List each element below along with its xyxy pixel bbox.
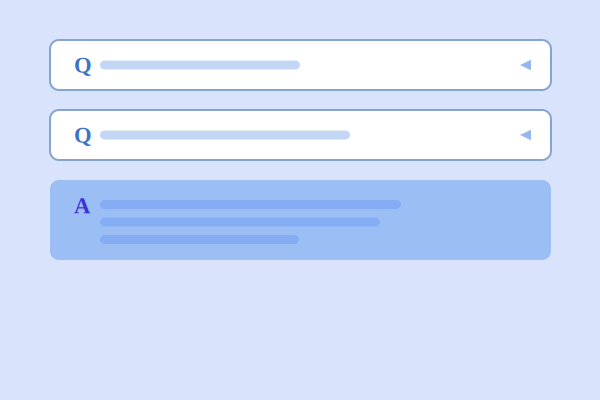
button[interactable]: Question [50, 40, 551, 90]
staticText: Q [74, 52, 92, 77]
staticText: A [74, 193, 90, 218]
button[interactable]: Question [50, 110, 551, 160]
staticText: Q [74, 122, 92, 147]
button[interactable]: Answer [50, 180, 551, 260]
